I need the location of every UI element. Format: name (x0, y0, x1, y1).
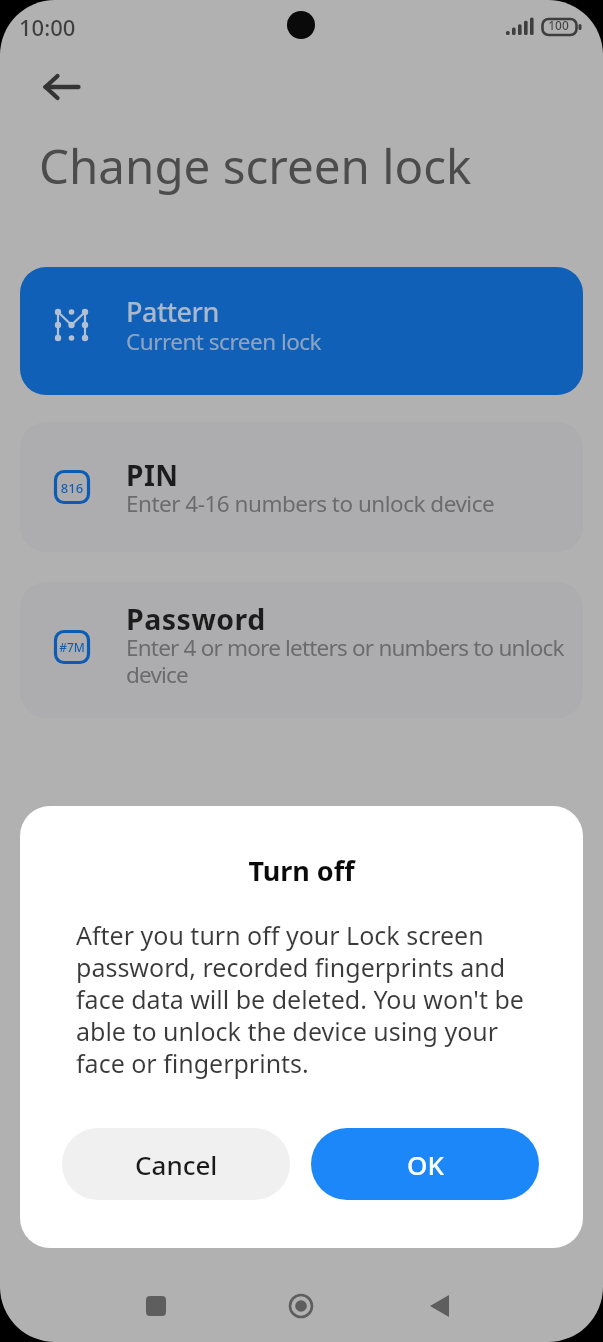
staticText: After you turn off your Lock screen pass… (76, 918, 546, 1080)
button[interactable]: Cancel (62, 1128, 290, 1200)
staticText: Change screen lock (39, 133, 472, 198)
button[interactable]: 816 (20, 422, 583, 552)
staticText: Password (126, 600, 266, 639)
staticText: PIN (126, 456, 179, 494)
staticText: Enter 4 or more letters or numbers to un… (126, 632, 564, 689)
button[interactable]: OK (311, 1128, 539, 1200)
staticText: Cancel (135, 1147, 218, 1182)
button[interactable] (32, 62, 82, 112)
staticText: Enter 4-16 numbers to unlock device (126, 488, 495, 519)
staticText: 10:00 (19, 12, 76, 42)
button[interactable]: Pattern (20, 267, 583, 395)
button[interactable]: #7M (20, 582, 583, 718)
staticText: 816 (54, 479, 90, 497)
staticText: #7M (54, 639, 90, 655)
staticText: Pattern (126, 293, 219, 330)
staticText: OK (407, 1147, 444, 1182)
staticText: 100 (543, 17, 574, 33)
staticText: Turn off (20, 852, 583, 889)
staticText: Current screen lock (126, 326, 322, 357)
